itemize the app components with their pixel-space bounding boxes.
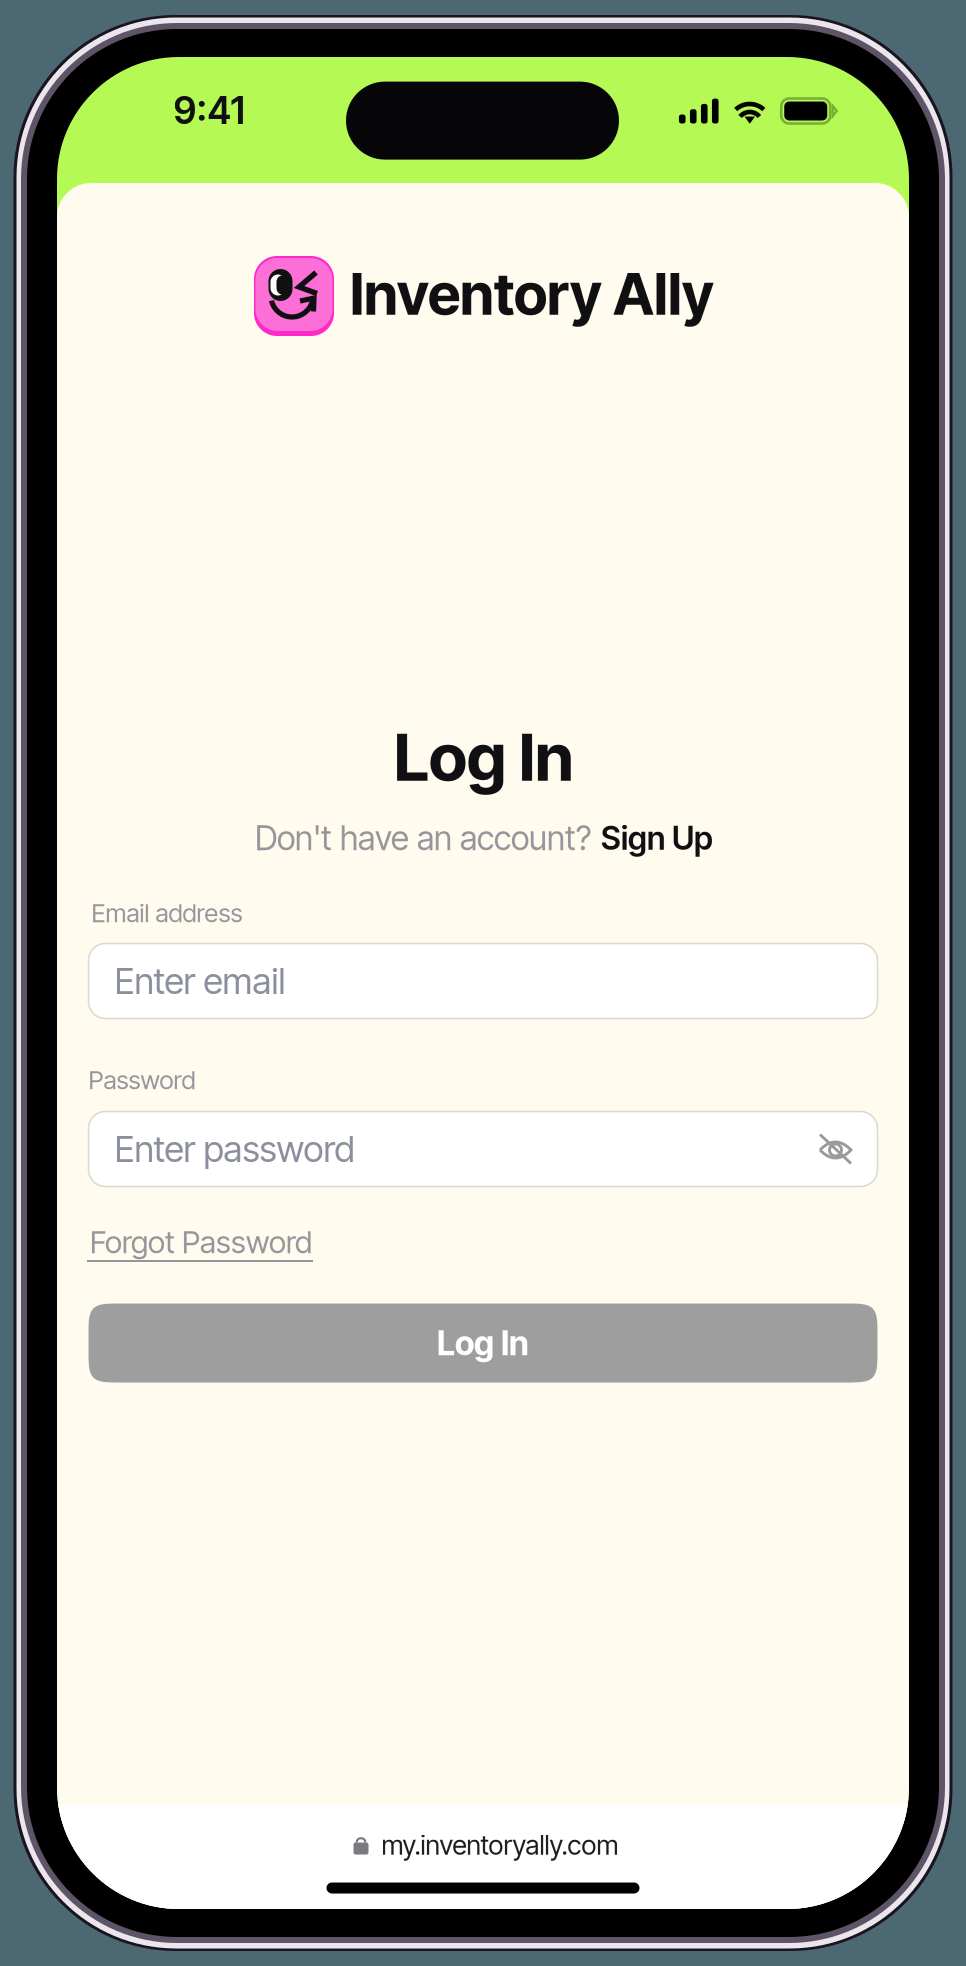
- button[interactable]: Forgot Password: [87, 1223, 315, 1269]
- staticText: Enter password: [114, 1127, 354, 1171]
- staticText: Don't have an account?: [255, 818, 591, 858]
- staticText: Password: [88, 1065, 195, 1095]
- staticText: Sign Up: [601, 819, 713, 857]
- staticText: 9:41: [173, 88, 244, 133]
- staticText: Inventory Ally: [350, 259, 714, 329]
- button[interactable]: Sign Up: [601, 819, 713, 857]
- staticText: Log In: [437, 1323, 529, 1363]
- staticText: Log In: [394, 717, 574, 796]
- staticText: my.inventoryally.com: [381, 1829, 618, 1861]
- staticText: Forgot Password: [90, 1223, 312, 1260]
- staticText: Email address: [91, 898, 242, 928]
- button[interactable]: Log In: [88, 1303, 877, 1382]
- button[interactable]: Show password: [817, 1132, 853, 1166]
- staticText: Enter email: [114, 959, 285, 1003]
